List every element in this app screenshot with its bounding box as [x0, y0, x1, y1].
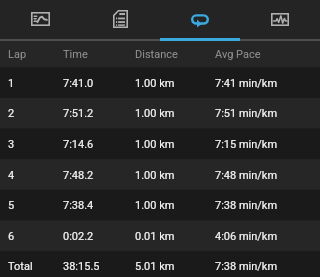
- staticText: 7:38 min/km: [215, 199, 278, 212]
- staticText: 7:51.2: [63, 107, 94, 120]
- staticText: 7:51 min/km: [215, 107, 278, 120]
- staticText: 1.00 km: [135, 107, 175, 120]
- staticText: Avg Pace: [215, 48, 261, 61]
- staticText: 1: [8, 77, 15, 90]
- staticText: 6: [8, 230, 15, 243]
- staticText: 7:38 min/km: [215, 260, 278, 273]
- staticText: 7:15 min/km: [215, 138, 278, 151]
- staticText: Lap: [8, 48, 27, 61]
- staticText: 5.01 km: [135, 260, 175, 273]
- staticText: 5: [8, 199, 15, 212]
- staticText: 7:48 min/km: [215, 169, 278, 182]
- button[interactable]: Chart: [240, 0, 320, 38]
- staticText: 3: [8, 138, 15, 151]
- staticText: 1.00 km: [135, 169, 175, 182]
- staticText: 4: [8, 169, 15, 182]
- button[interactable]: Laps: [160, 0, 240, 38]
- staticText: 0.01 km: [135, 230, 175, 243]
- staticText: Time: [63, 48, 88, 61]
- staticText: 38:15.5: [63, 260, 100, 273]
- staticText: 7:48.2: [63, 169, 94, 182]
- staticText: 7:14.6: [63, 138, 94, 151]
- staticText: 7:38.4: [63, 199, 94, 212]
- button[interactable]: [0, 68, 320, 251]
- button[interactable]: Photo: [0, 0, 80, 38]
- staticText: 1.00 km: [135, 199, 175, 212]
- staticText: 4:06 min/km: [215, 230, 278, 243]
- staticText: Distance: [135, 48, 178, 61]
- button[interactable]: Details: [80, 0, 160, 38]
- staticText: 2: [8, 107, 15, 120]
- staticText: Total: [8, 260, 33, 273]
- staticText: 0:02.2: [63, 230, 94, 243]
- staticText: 1.00 km: [135, 138, 175, 151]
- staticText: 7:41.0: [63, 77, 94, 90]
- staticText: 1.00 km: [135, 77, 175, 90]
- staticText: 7:41 min/km: [215, 77, 278, 90]
